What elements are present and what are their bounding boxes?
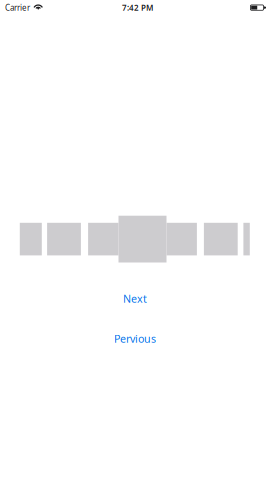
staticText: Carrier xyxy=(5,2,30,13)
button[interactable]: Pervious xyxy=(0,329,270,347)
staticText: Pervious xyxy=(114,331,156,346)
staticText: Next xyxy=(123,291,147,306)
button[interactable]: Next xyxy=(0,289,270,307)
staticText: 7:42 PM xyxy=(122,2,153,13)
